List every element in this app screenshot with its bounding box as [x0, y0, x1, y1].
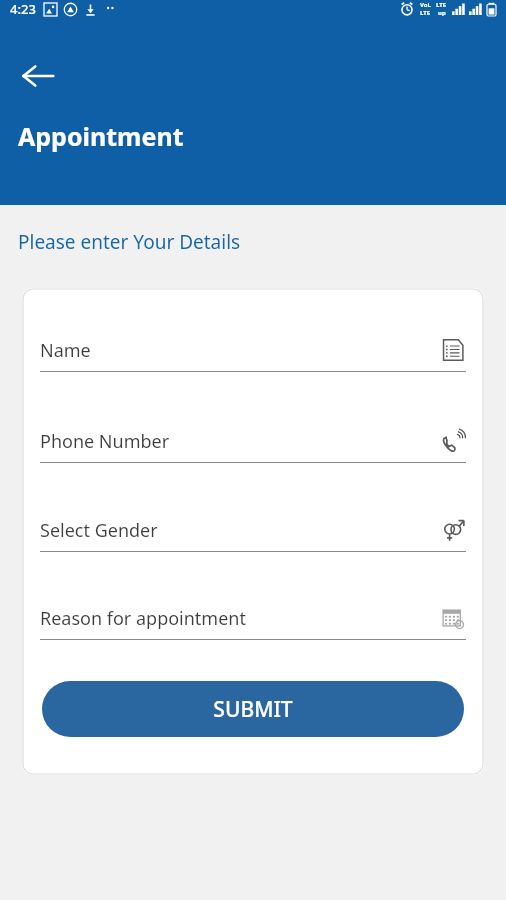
staticText: VoL — [420, 1, 431, 9]
staticText: SUBMIT — [213, 695, 293, 724]
staticText: Reason for appointment — [40, 606, 440, 631]
button[interactable]: SUBMIT — [42, 681, 464, 737]
staticText: LTE — [420, 9, 431, 17]
button[interactable]: Select Gender — [40, 517, 466, 552]
staticText: 4:23 — [10, 0, 36, 18]
button[interactable]: Name — [40, 337, 466, 372]
staticText: LTE — [436, 1, 447, 9]
staticText: Select Gender — [40, 518, 440, 543]
staticText: Please enter Your Details — [18, 229, 241, 255]
staticText: Appointment — [18, 119, 184, 153]
staticText: Phone Number — [40, 429, 440, 454]
button[interactable]: Reason for appointment — [40, 605, 466, 640]
staticText: up — [438, 9, 446, 17]
button[interactable]: Back — [14, 52, 62, 100]
staticText: Name — [40, 338, 440, 363]
button[interactable]: Phone Number — [40, 428, 466, 463]
